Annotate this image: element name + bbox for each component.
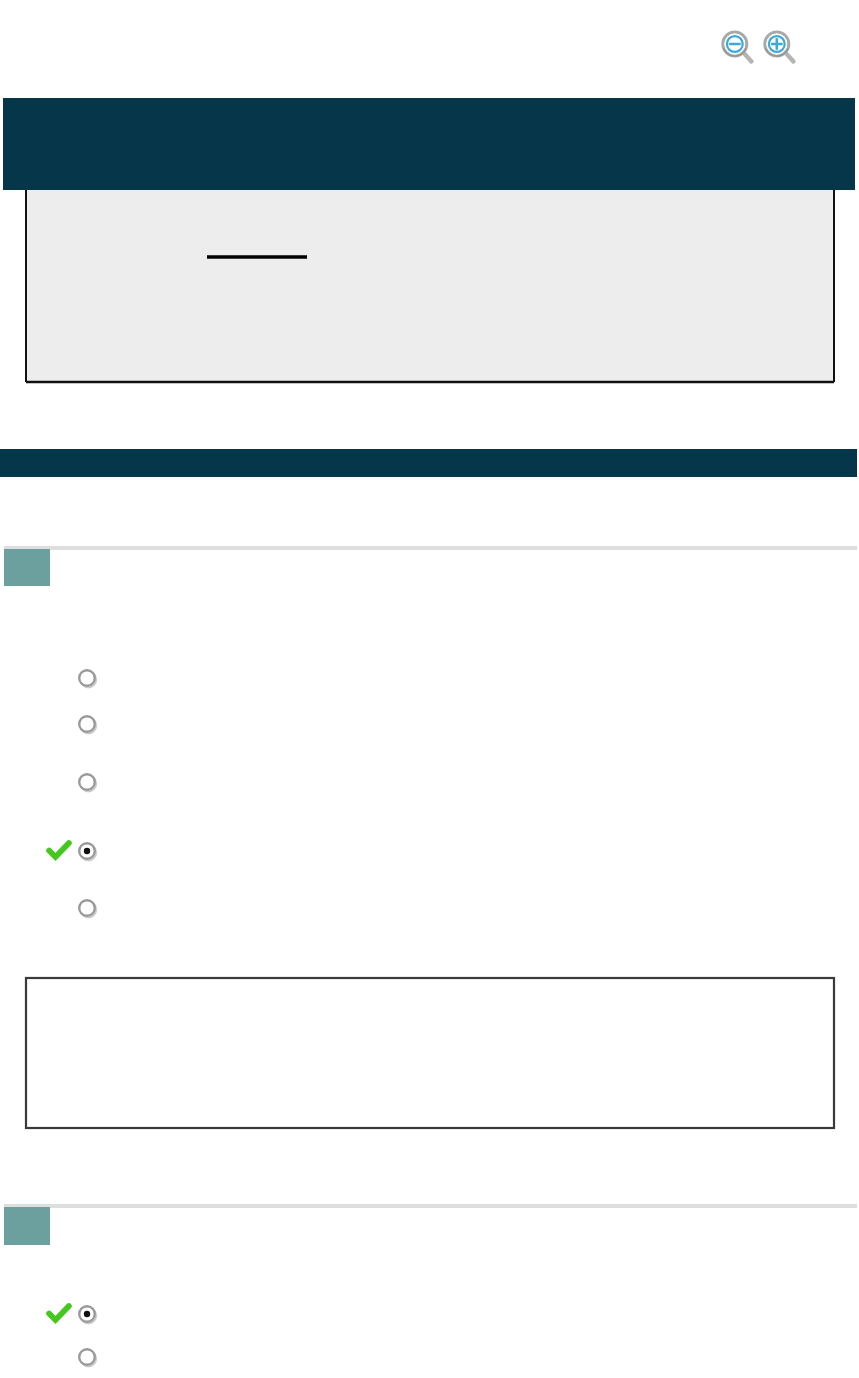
button[interactable]: [40, 1298, 800, 1330]
button[interactable]: [40, 766, 800, 798]
button[interactable]: [40, 708, 800, 740]
button[interactable]: Zoom in: [760, 28, 800, 68]
button[interactable]: [40, 892, 800, 924]
button[interactable]: [40, 1341, 800, 1373]
button[interactable]: Zoom out: [718, 28, 758, 68]
button[interactable]: [40, 835, 800, 867]
button[interactable]: [40, 662, 800, 694]
